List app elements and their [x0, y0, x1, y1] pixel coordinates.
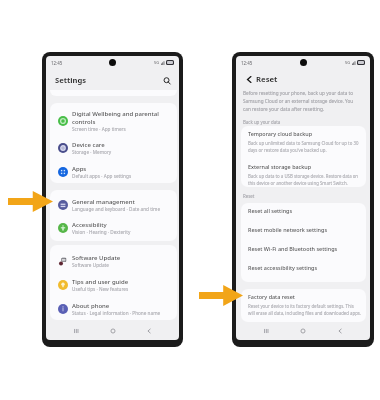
- staticText: General management: [72, 198, 135, 206]
- button[interactable]: Back: [332, 323, 348, 339]
- staticText: About phone: [72, 302, 110, 310]
- staticText: Language and keyboard · Date and time: [72, 206, 161, 212]
- button[interactable]: Digital Wellbeing and parental controls: [50, 107, 177, 134]
- button[interactable]: Apps: [50, 162, 177, 182]
- button[interactable]: Device care: [50, 138, 177, 158]
- button[interactable]: About phone: [50, 299, 177, 319]
- staticText: Status · Legal information · Phone name: [72, 310, 161, 316]
- staticText: Screen time · App timers: [72, 126, 126, 132]
- button[interactable]: Temporary cloud backup: [241, 130, 366, 164]
- staticText: Tips and user guide: [72, 278, 129, 286]
- staticText: Reset Wi-Fi and Bluetooth settings: [248, 245, 338, 252]
- staticText: Reset: [256, 74, 278, 84]
- staticText: Reset: [243, 193, 255, 199]
- staticText: Reset all settings: [248, 207, 293, 214]
- staticText: Temporary cloud backup: [248, 130, 313, 137]
- staticText: Back up unlimited data to Samsung Cloud …: [248, 140, 359, 153]
- staticText: Digital Wellbeing and parental controls: [72, 110, 159, 126]
- button[interactable]: Home: [105, 323, 121, 339]
- button[interactable]: Home: [295, 323, 311, 339]
- staticText: Storage · Memory: [72, 149, 112, 155]
- staticText: Back up data to a USB storage device. Re…: [248, 173, 359, 186]
- staticText: Vision · Hearing · Dexterity: [72, 229, 131, 235]
- button[interactable]: External storage backup: [241, 163, 366, 187]
- button[interactable]: Software Update: [50, 251, 177, 271]
- button[interactable]: Reset Wi-Fi and Bluetooth settings: [241, 245, 366, 264]
- button[interactable]: Reset mobile network settings: [241, 226, 366, 245]
- button[interactable]: Back: [141, 323, 157, 339]
- button[interactable]: Search: [161, 75, 172, 86]
- button[interactable]: Accessibility: [50, 218, 177, 238]
- staticText: Accessibility: [72, 221, 107, 229]
- staticText: Settings: [55, 75, 87, 85]
- staticText: Device care: [72, 141, 105, 149]
- button[interactable]: Reset accessibility settings: [241, 264, 366, 282]
- staticText: Default apps · App settings: [72, 173, 132, 179]
- staticText: Software Update: [72, 262, 109, 268]
- staticText: Reset mobile network settings: [248, 226, 328, 233]
- staticText: Apps: [72, 165, 87, 173]
- staticText: Useful tips · New features: [72, 286, 129, 292]
- button[interactable]: Recents: [68, 323, 84, 339]
- staticText: 12:45: [241, 60, 253, 66]
- staticText: Before resetting your phone, back up you…: [243, 90, 354, 112]
- staticText: 5G: [154, 60, 160, 65]
- button[interactable]: Recents: [258, 323, 274, 339]
- button[interactable]: General management: [50, 195, 177, 215]
- button[interactable]: Navigate up: [243, 73, 255, 85]
- staticText: External storage backup: [248, 163, 312, 170]
- button[interactable]: Tips and user guide: [50, 275, 177, 295]
- staticText: Factory data reset: [248, 293, 295, 300]
- staticText: Software Update: [72, 254, 121, 262]
- staticText: Reset accessibility settings: [248, 264, 318, 271]
- staticText: Reset your device to its factory default…: [248, 303, 362, 316]
- button[interactable]: Reset all settings: [241, 207, 366, 226]
- staticText: 5G: [345, 60, 351, 65]
- button[interactable]: Factory data reset: [241, 293, 366, 322]
- staticText: 12:45: [51, 60, 63, 66]
- staticText: Back up your data: [243, 119, 281, 125]
